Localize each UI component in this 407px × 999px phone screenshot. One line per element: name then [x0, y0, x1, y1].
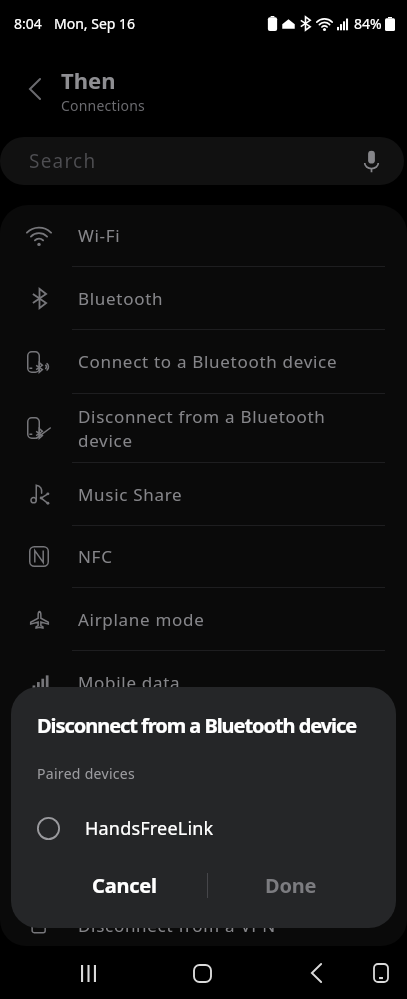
button[interactable]: Done [208, 864, 374, 906]
staticText: Done [265, 872, 317, 899]
button[interactable]: Recents [66, 951, 110, 995]
button[interactable]: Back [13, 67, 57, 111]
button[interactable]: Music Share [0, 463, 407, 526]
button[interactable]: Hide keyboard [359, 951, 403, 995]
staticText: Airplane mode [78, 608, 205, 631]
staticText: Disconnect from a Bluetooth device [78, 405, 344, 452]
button[interactable]: Airplane mode [0, 588, 407, 651]
staticText: 8:04 [14, 14, 42, 33]
button[interactable]: Disconnect from a VPN [0, 905, 407, 946]
staticText: Disconnect from a Bluetooth device [37, 712, 357, 739]
staticText: Wi-Fi [78, 224, 121, 247]
staticText: Connections [61, 96, 145, 115]
button[interactable]: HandsFreeLink [11, 806, 396, 850]
button[interactable]: NFC [0, 526, 407, 588]
button[interactable]: Mobile hotspot and tethering [0, 778, 407, 841]
staticText: More connection settings [78, 861, 298, 884]
staticText: 84% [354, 14, 382, 33]
button[interactable]: Mobile data [0, 651, 407, 714]
button[interactable]: Back [294, 951, 338, 995]
staticText: Search [29, 148, 97, 174]
button[interactable]: More connection settings [0, 841, 407, 905]
staticText: Connect to a Bluetooth device [78, 350, 338, 373]
staticText: Cancel [92, 872, 157, 899]
staticText: Music Share [78, 483, 183, 506]
button[interactable]: Connect to a Bluetooth device [0, 330, 407, 394]
staticText: HandsFreeLink [85, 816, 214, 841]
staticText: Then [61, 65, 116, 95]
staticText: Disconnect from a VPN [78, 914, 276, 937]
staticText: Bluetooth [78, 287, 164, 310]
staticText: Mon, Sep 16 [54, 14, 136, 33]
button[interactable]: Bluetooth [0, 267, 407, 330]
button[interactable]: Cancel [41, 864, 207, 906]
button[interactable]: Disconnect from a Bluetooth device [0, 394, 407, 463]
staticText: Paired devices [37, 764, 136, 783]
button[interactable]: Voice search [356, 146, 386, 176]
button[interactable]: Search [0, 137, 404, 185]
button[interactable]: Home [180, 951, 224, 995]
staticText: NFC [78, 545, 113, 568]
button[interactable]: Data usage [0, 714, 407, 778]
button[interactable]: Wi-Fi [0, 205, 407, 267]
staticText: Mobile data [78, 671, 181, 694]
